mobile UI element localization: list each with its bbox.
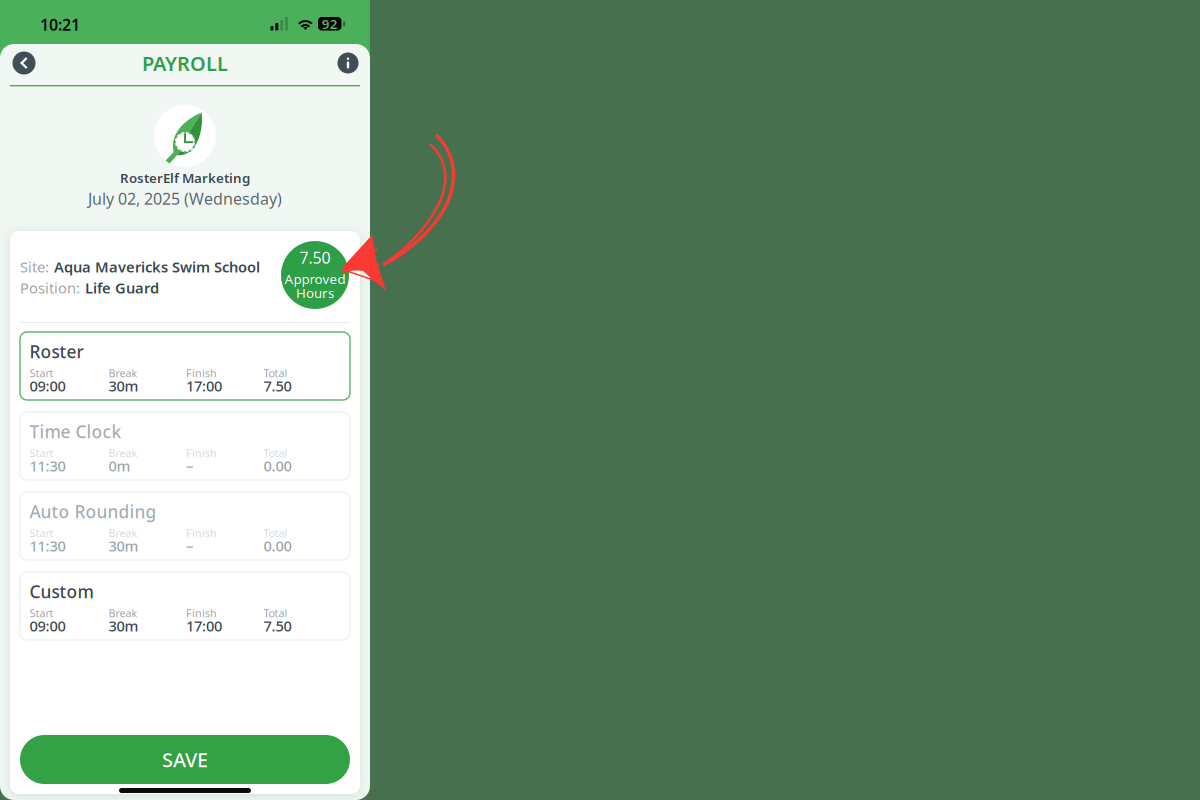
staticText: 0.00 (263, 456, 291, 475)
staticText: Finish (186, 446, 217, 460)
staticText: PAYROLL (142, 50, 228, 77)
staticText: 30m (108, 616, 138, 635)
staticText: 0.00 (263, 536, 291, 555)
staticText: Life Guard (85, 278, 159, 297)
staticText: 7.50 (263, 376, 291, 395)
button[interactable]: SAVE (20, 735, 350, 784)
staticText: 92 (322, 15, 338, 33)
staticText: Total (263, 526, 287, 540)
staticText: – (186, 456, 193, 475)
staticText: Aqua Mavericks Swim School (54, 257, 260, 276)
staticText: Custom (29, 580, 93, 603)
button[interactable]: Custom (20, 572, 350, 640)
staticText: 0m (108, 456, 130, 475)
staticText: Finish (186, 606, 217, 620)
staticText: Break (108, 606, 137, 620)
staticText: Roster (29, 340, 83, 363)
staticText: Finish (186, 366, 217, 380)
staticText: 17:00 (186, 616, 222, 635)
staticText: Break (108, 446, 137, 460)
staticText: 09:00 (29, 616, 65, 635)
staticText: Break (108, 366, 137, 380)
staticText: SAVE (162, 746, 208, 773)
staticText: Position: (20, 278, 80, 297)
staticText: 7.50 (263, 616, 291, 635)
staticText: 17:00 (186, 376, 222, 395)
staticText: Total (263, 366, 287, 380)
staticText: 10:21 (40, 14, 80, 35)
staticText: 11:30 (29, 456, 65, 475)
staticText: Time Clock (29, 420, 121, 443)
staticText: 7.50 (299, 247, 330, 268)
staticText: – (186, 536, 193, 555)
staticText: Hours (296, 284, 334, 302)
button[interactable]: Back (4, 44, 44, 82)
staticText: 30m (108, 376, 138, 395)
staticText: Auto Rounding (29, 500, 156, 523)
staticText: Start (29, 366, 53, 380)
button[interactable]: Auto Rounding (20, 492, 350, 560)
staticText: Approved (284, 270, 345, 288)
button[interactable]: Time Clock (20, 412, 350, 480)
button[interactable]: Roster (20, 332, 350, 400)
staticText: 09:00 (29, 376, 65, 395)
staticText: 30m (108, 536, 138, 555)
staticText: Site: (20, 257, 49, 276)
staticText: 11:30 (29, 536, 65, 555)
staticText: Total (263, 606, 287, 620)
staticText: Finish (186, 526, 217, 540)
staticText: Total (263, 446, 287, 460)
staticText: Start (29, 446, 53, 460)
staticText: Start (29, 606, 53, 620)
staticText: Start (29, 526, 53, 540)
staticText: RosterElf Marketing (120, 169, 250, 187)
staticText: July 02, 2025 (Wednesday) (88, 188, 282, 209)
button[interactable]: Information (329, 44, 367, 82)
staticText: Break (108, 526, 137, 540)
